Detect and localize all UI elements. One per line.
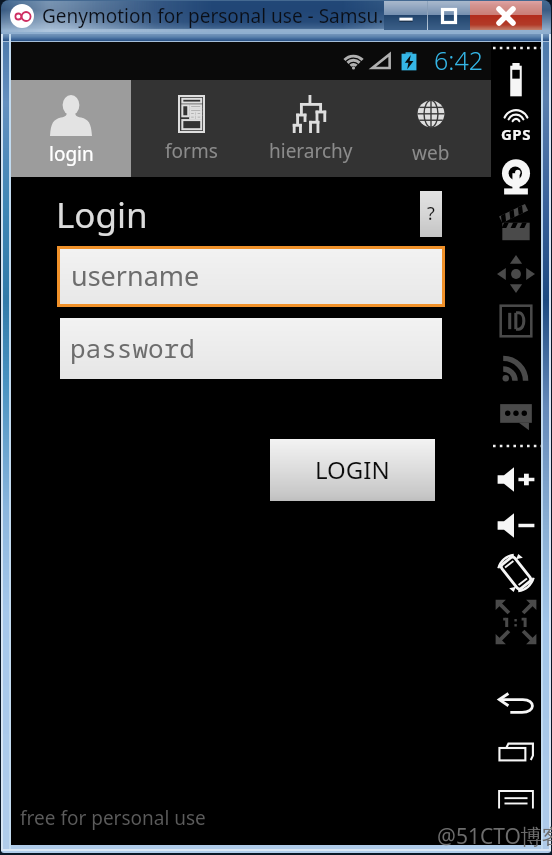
button[interactable]: Rotate screen: [491, 550, 541, 596]
button[interactable]: GPS: [491, 110, 541, 142]
button[interactable]: Accelerometer: [491, 251, 541, 297]
staticText: web: [412, 140, 450, 166]
staticText: free for personal use: [20, 805, 206, 831]
staticText: hierarchy: [269, 138, 353, 164]
staticText: Genymotion for personal use - Samsu...: [42, 3, 394, 29]
button[interactable]: username: [60, 249, 442, 304]
staticText: login: [49, 141, 94, 167]
button[interactable]: Identifiers: [491, 300, 541, 342]
button[interactable]: Back: [491, 689, 541, 719]
staticText: password: [70, 330, 195, 365]
staticText: ?: [427, 201, 435, 226]
button[interactable]: hierarchy: [251, 80, 371, 177]
button[interactable]: Minimize: [384, 1, 427, 30]
button[interactable]: Scale 1 to 1: [491, 597, 541, 647]
button[interactable]: LOGIN: [270, 439, 435, 501]
button[interactable]: Battery: [491, 59, 541, 101]
button[interactable]: login: [11, 80, 131, 177]
button[interactable]: Network: [491, 348, 541, 388]
button[interactable]: Menu: [491, 786, 541, 813]
button[interactable]: ?: [420, 191, 442, 237]
button[interactable]: Recent apps: [491, 738, 541, 766]
staticText: LOGIN: [315, 453, 390, 486]
staticText: GPS: [501, 124, 531, 142]
staticText: Login: [56, 191, 148, 239]
button[interactable]: Maximize: [428, 1, 470, 30]
button[interactable]: password: [60, 318, 442, 379]
button[interactable]: Volume down: [491, 507, 541, 544]
button[interactable]: Close: [470, 1, 542, 30]
button[interactable]: web: [371, 80, 491, 177]
staticText: forms: [165, 138, 218, 164]
button[interactable]: forms: [131, 80, 251, 177]
button[interactable]: Video recording: [491, 202, 541, 248]
staticText: username: [71, 257, 200, 294]
button[interactable]: SMS: [491, 394, 541, 436]
button[interactable]: Volume up: [491, 461, 541, 498]
staticText: @51CTO博客: [437, 822, 552, 851]
button[interactable]: Camera: [491, 154, 541, 200]
staticText: 6:42: [434, 43, 483, 77]
